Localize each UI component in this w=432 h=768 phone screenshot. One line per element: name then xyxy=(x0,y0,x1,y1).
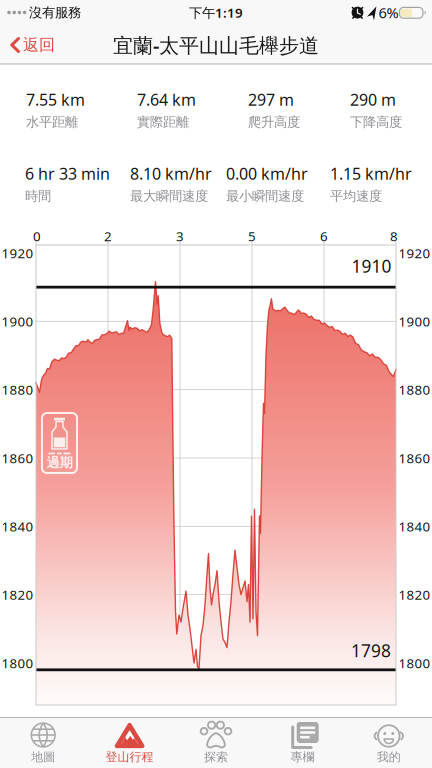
staticText: 時間 xyxy=(25,188,51,204)
staticText: 返回 xyxy=(23,35,55,55)
staticText: 宜蘭-太平山山毛櫸步道 xyxy=(113,32,319,58)
staticText: 1910 xyxy=(351,254,391,277)
staticText: 我的 xyxy=(377,750,401,764)
button[interactable]: 登山行程 xyxy=(86,717,173,768)
staticText: 水平距離 xyxy=(26,114,78,130)
staticText: 平均速度 xyxy=(330,188,382,204)
button[interactable]: 專欄 xyxy=(259,717,346,768)
button[interactable]: 我的 xyxy=(346,717,432,768)
staticText: 7.64 km xyxy=(137,89,196,110)
staticText: 290 m xyxy=(350,89,396,110)
staticText: 1860 xyxy=(1,449,33,467)
staticText: 1800 xyxy=(1,654,33,672)
staticText: 下午1:19 xyxy=(189,4,243,21)
staticText: 爬升高度 xyxy=(248,114,300,130)
staticText: 1900 xyxy=(1,312,33,330)
staticText: 0.00 km/hr xyxy=(226,163,308,184)
staticText: 1820 xyxy=(398,586,430,603)
staticText: 0 xyxy=(33,227,41,245)
staticText: 1880 xyxy=(1,381,33,398)
staticText: 8 xyxy=(390,227,398,245)
staticText: 1900 xyxy=(398,312,430,330)
staticText: 1820 xyxy=(1,586,33,603)
staticText: 297 m xyxy=(248,89,294,110)
staticText: 過期 xyxy=(46,454,72,471)
staticText: 1920 xyxy=(398,244,430,262)
staticText: 5 xyxy=(248,227,256,245)
staticText: 6% xyxy=(378,3,398,22)
staticText: 1840 xyxy=(1,517,33,535)
button[interactable]: 返回 xyxy=(10,25,55,65)
staticText: 專欄 xyxy=(290,750,314,764)
staticText: 3 xyxy=(176,227,184,245)
staticText: 最小瞬間速度 xyxy=(226,188,304,204)
staticText: 1860 xyxy=(398,449,430,467)
staticText: 探索 xyxy=(204,750,228,764)
staticText: 1798 xyxy=(351,639,391,662)
button[interactable]: 地圖 xyxy=(0,717,86,768)
staticText: 1.15 km/hr xyxy=(330,163,412,184)
staticText: 1880 xyxy=(398,381,430,398)
staticText: 6 xyxy=(320,227,328,245)
staticText: 登山行程 xyxy=(106,750,154,764)
button[interactable]: 探索 xyxy=(173,717,259,768)
staticText: 實際距離 xyxy=(137,114,189,130)
staticText: 1920 xyxy=(1,244,33,262)
staticText: 2 xyxy=(104,227,112,245)
staticText: 8.10 km/hr xyxy=(130,163,212,184)
staticText: 7.55 km xyxy=(26,89,85,110)
staticText: 沒有服務 xyxy=(29,4,81,21)
staticText: 6 hr 33 min xyxy=(25,163,110,184)
staticText: 最大瞬間速度 xyxy=(130,188,208,204)
staticText: 地圖 xyxy=(31,750,55,764)
staticText: 下降高度 xyxy=(350,114,402,130)
staticText: 1840 xyxy=(398,517,430,535)
staticText: 1800 xyxy=(398,654,430,672)
